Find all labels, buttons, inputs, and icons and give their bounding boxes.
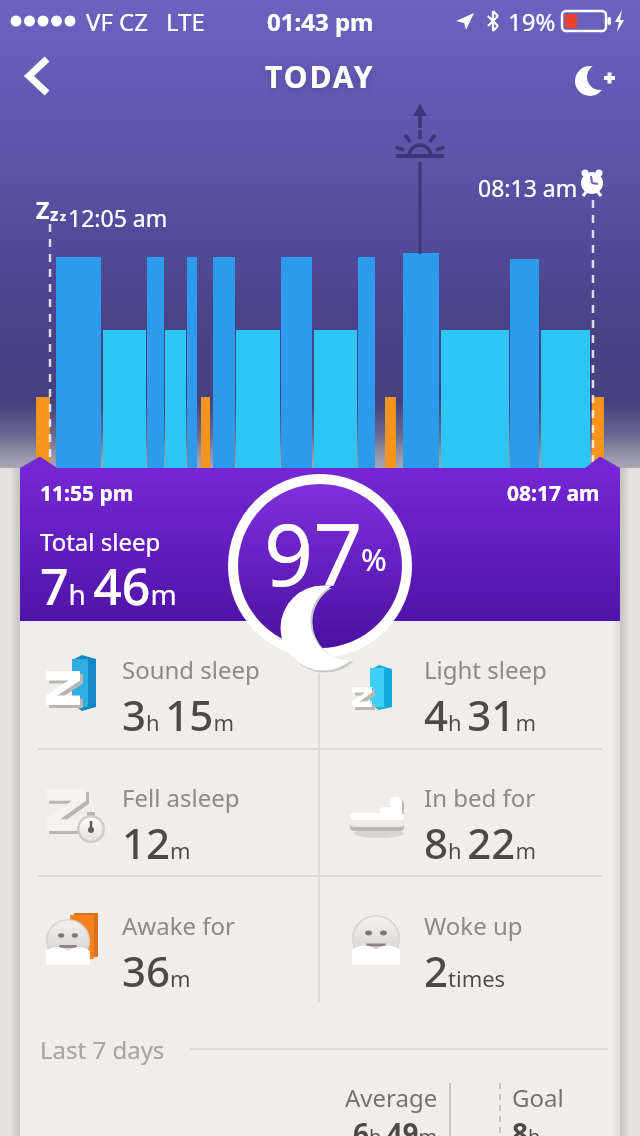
staticText: 08:17 am <box>507 479 600 508</box>
staticText: Z <box>36 194 50 225</box>
staticText: 4h 31m <box>424 686 536 743</box>
staticText: 8h <box>512 1114 541 1136</box>
button[interactable]: Woke up <box>342 877 620 1005</box>
staticText: 6h 49m <box>353 1114 438 1136</box>
staticText: Fell asleep <box>122 781 240 814</box>
staticText: Light sleep <box>424 653 547 686</box>
staticText: 8h 22m <box>424 814 536 871</box>
button[interactable]: TODAY <box>265 56 375 97</box>
button[interactable]: Light sleep <box>342 621 620 749</box>
button[interactable]: Sound sleep <box>40 621 318 749</box>
staticText: Total sleep <box>40 525 161 558</box>
staticText: Awake for <box>122 909 235 942</box>
staticText: 01:43 pm <box>267 5 374 38</box>
staticText: 12:05 am <box>68 202 168 233</box>
staticText: LTE <box>166 5 205 38</box>
staticText: % <box>361 538 387 580</box>
button[interactable]: Fell asleep <box>40 749 318 877</box>
staticText: VF CZ <box>86 5 148 38</box>
staticText: Woke up <box>424 909 523 942</box>
staticText: 08:13 am <box>478 172 578 203</box>
staticText: TODAY <box>265 56 375 97</box>
button[interactable] <box>578 52 626 100</box>
staticText: 2times <box>424 942 506 999</box>
staticText: 97 <box>264 494 363 611</box>
staticText: 3h 15m <box>122 686 234 743</box>
staticText: Average <box>345 1081 438 1114</box>
button[interactable]: Awake for <box>40 877 318 1005</box>
staticText: 7h 46m <box>40 552 177 620</box>
staticText: Goal <box>512 1081 564 1114</box>
staticText: 12m <box>122 814 191 871</box>
staticText: 19% <box>508 5 556 38</box>
button[interactable]: In bed for <box>342 749 620 877</box>
staticText: In bed for <box>424 781 536 814</box>
staticText: Sound sleep <box>122 653 260 686</box>
staticText: Last 7 days <box>40 1033 165 1066</box>
button[interactable] <box>16 54 60 98</box>
staticText: 11:55 pm <box>40 479 134 508</box>
staticText: z <box>60 208 66 224</box>
staticText: z <box>50 203 59 226</box>
button[interactable]: 97 <box>228 474 418 684</box>
staticText: 36m <box>122 942 191 999</box>
